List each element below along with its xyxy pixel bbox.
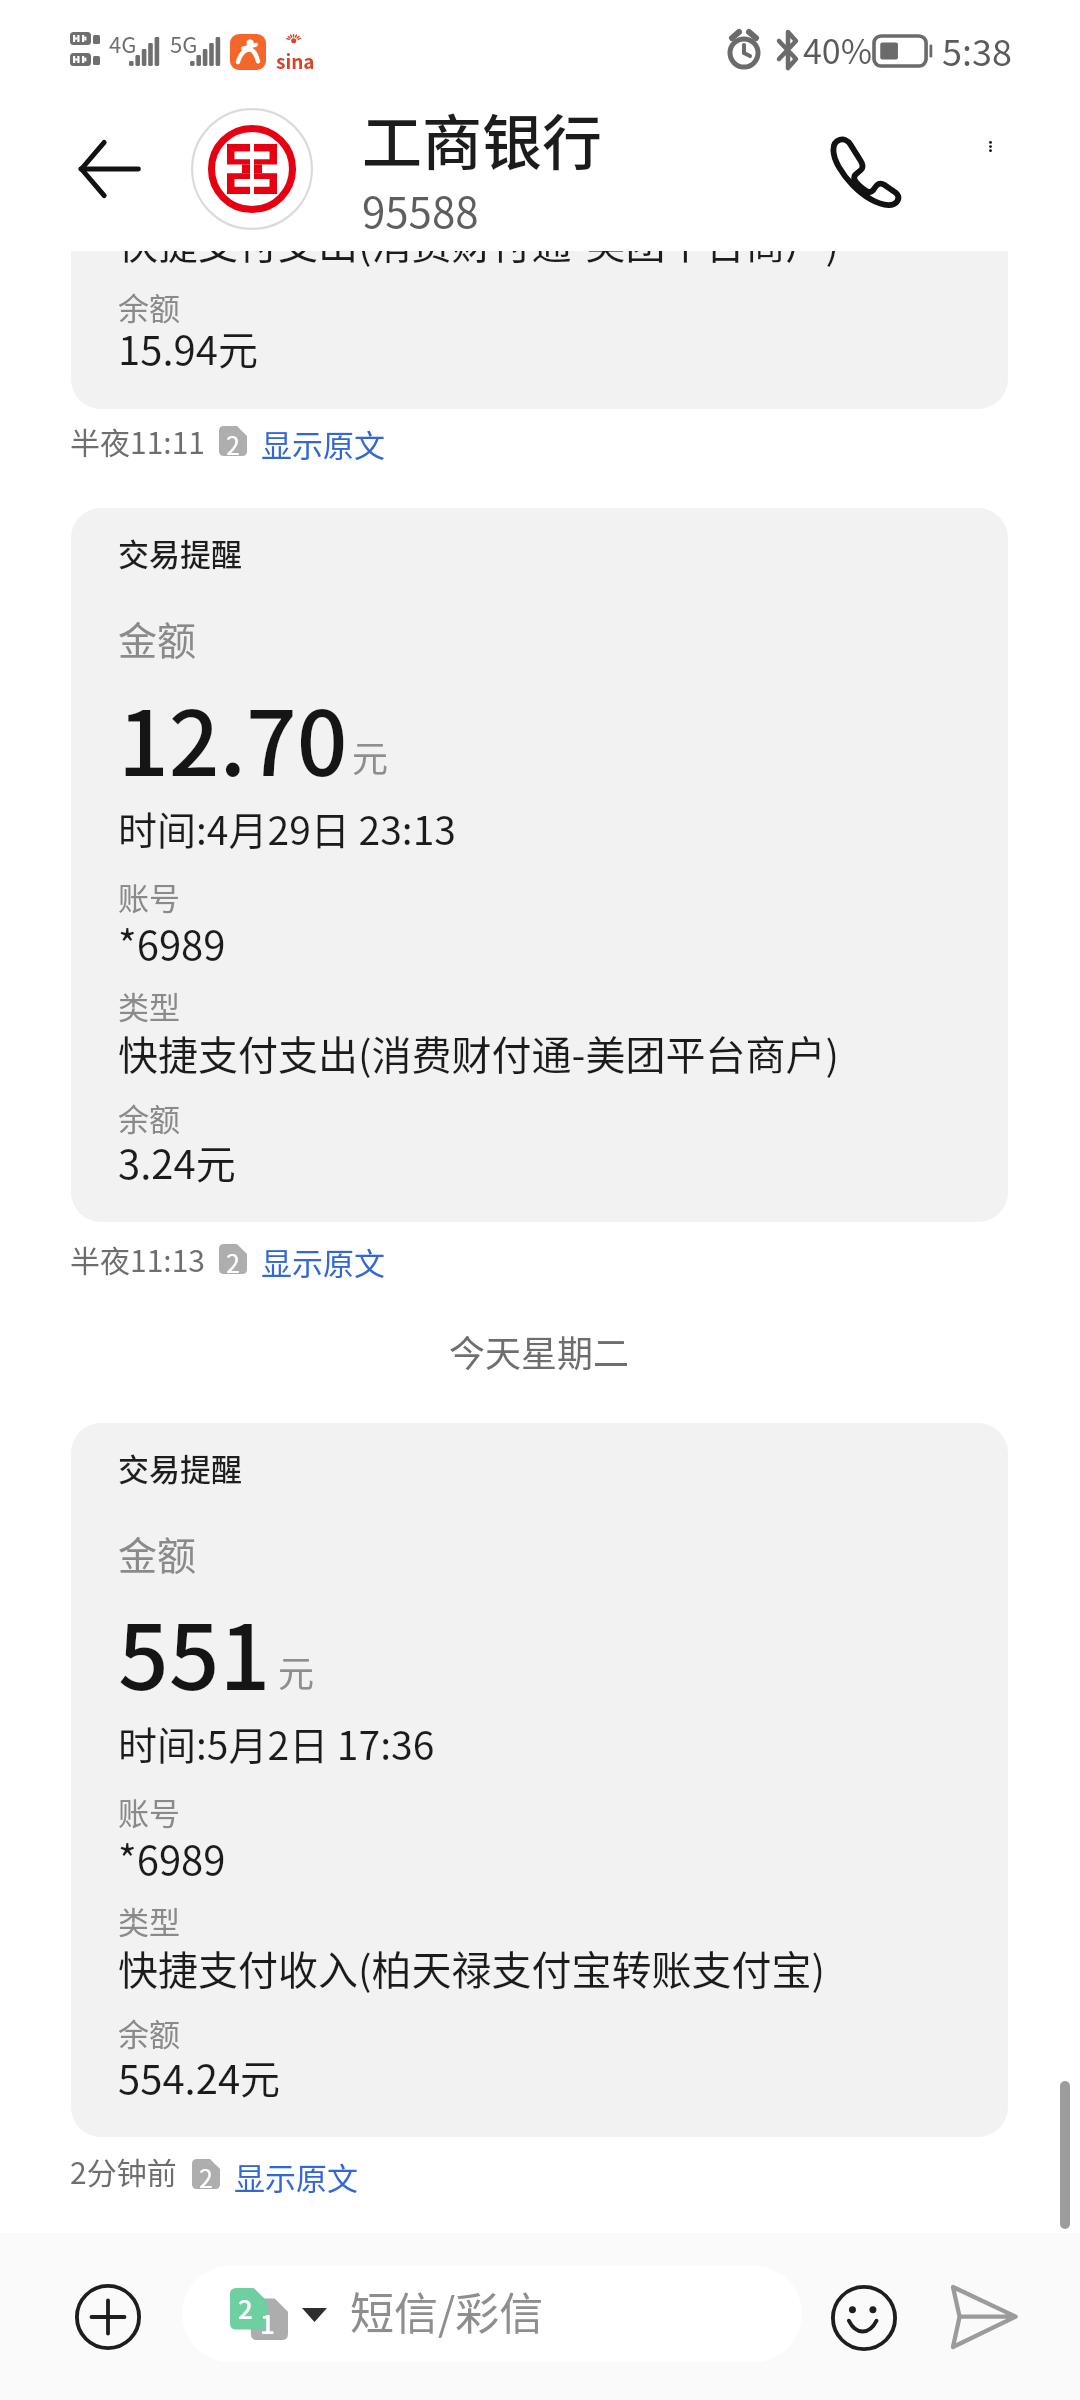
staticText: 2 bbox=[226, 1244, 240, 1274]
button[interactable]: 显示原文 bbox=[263, 1236, 387, 1286]
staticText: 5:38 bbox=[942, 24, 1012, 76]
button[interactable]: 交易提醒 bbox=[71, 1423, 1008, 2137]
staticText: 快捷支付支出(消费财付通-美团平台商户) bbox=[118, 251, 839, 271]
button[interactable]: 交易提醒 bbox=[71, 508, 1008, 1222]
button[interactable]: 快捷支付支出(消费财付通-美团平台商户) bbox=[71, 251, 1008, 409]
staticText: 元 bbox=[352, 730, 389, 782]
staticText: 工商银行 bbox=[362, 95, 602, 182]
button[interactable]: Send bbox=[951, 2285, 1017, 2351]
staticText: 交易提醒 bbox=[118, 1445, 242, 1490]
button[interactable]: 显示原文 bbox=[263, 418, 387, 468]
button[interactable]: Add attachment bbox=[75, 2284, 141, 2350]
staticText: 15.94元 bbox=[118, 319, 258, 377]
staticText: 5G bbox=[170, 27, 198, 59]
button[interactable]: 1 bbox=[182, 2266, 802, 2362]
staticText: 交易提醒 bbox=[118, 530, 242, 575]
staticText: 3.24元 bbox=[118, 1133, 236, 1191]
staticText: 2 bbox=[238, 2289, 253, 2327]
staticText: 时间:5月2日 17:36 bbox=[118, 1715, 435, 1771]
staticText: 快捷支付收入(柏天禄支付宝转账支付宝) bbox=[118, 1939, 826, 1997]
staticText: 551 bbox=[118, 1587, 271, 1716]
staticText: 余额 bbox=[118, 1095, 180, 1140]
staticText: 时间:4月29日 23:13 bbox=[118, 800, 456, 856]
staticText: 2分钟前 bbox=[70, 2149, 177, 2192]
staticText: 类型 bbox=[118, 1898, 180, 1943]
staticText: 显示原文 bbox=[234, 2154, 358, 2199]
staticText: 今天星期二 bbox=[449, 1325, 630, 1377]
staticText: 1 bbox=[260, 2304, 275, 2342]
staticText: 余额 bbox=[118, 284, 180, 329]
staticText: 2 bbox=[199, 2159, 213, 2189]
button[interactable]: More options bbox=[946, 124, 1034, 212]
staticText: sina bbox=[276, 47, 315, 75]
staticText: 短信/彩信 bbox=[350, 2279, 544, 2343]
staticText: *6989 bbox=[118, 914, 226, 972]
button[interactable]: Back bbox=[62, 125, 156, 213]
button[interactable]: 显示原文 bbox=[236, 2151, 360, 2201]
staticText: 2 bbox=[226, 426, 240, 456]
staticText: 12.70 bbox=[118, 673, 348, 802]
staticText: 40% bbox=[803, 25, 873, 74]
staticText: 账号 bbox=[118, 1789, 180, 1834]
staticText: 显示原文 bbox=[261, 421, 385, 466]
staticText: 元 bbox=[278, 1645, 315, 1697]
staticText: 金额 bbox=[118, 610, 197, 666]
staticText: 账号 bbox=[118, 874, 180, 919]
staticText: 554.24元 bbox=[118, 2048, 281, 2106]
staticText: 4G bbox=[109, 27, 137, 59]
button[interactable]: Call bbox=[815, 120, 913, 218]
staticText: 金额 bbox=[118, 1525, 197, 1581]
button[interactable]: Emoji bbox=[831, 2285, 897, 2351]
staticText: 显示原文 bbox=[261, 1239, 385, 1284]
staticText: 半夜11:13 bbox=[70, 1237, 205, 1280]
staticText: *6989 bbox=[118, 1829, 226, 1887]
staticText: 类型 bbox=[118, 983, 180, 1028]
staticText: 余额 bbox=[118, 2010, 180, 2055]
staticText: 半夜11:11 bbox=[70, 419, 205, 462]
staticText: 95588 bbox=[362, 179, 479, 240]
staticText: 快捷支付支出(消费财付通-美团平台商户) bbox=[118, 1024, 839, 1082]
